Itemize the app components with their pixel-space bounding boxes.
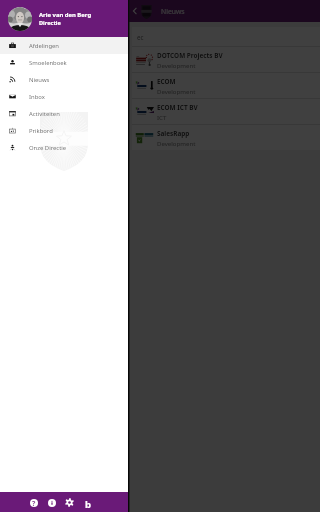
button[interactable]: ECOM [132, 73, 320, 98]
staticText: Development [157, 61, 196, 69]
staticText: Afdelingen [29, 42, 60, 50]
button[interactable]: Help [28, 497, 39, 508]
button[interactable]: Smoelenboek [0, 54, 128, 71]
staticText: Nieuws [161, 7, 185, 16]
staticText: Development [157, 87, 196, 95]
staticText: Nieuws [29, 76, 50, 84]
button[interactable]: SalesRapp [132, 125, 320, 150]
staticText: ECOM ICT BV [157, 103, 198, 112]
button[interactable]: Back [129, 5, 141, 17]
staticText: ECOM [157, 77, 176, 86]
button[interactable]: Settings [64, 497, 75, 508]
button[interactable]: Inbox [0, 88, 128, 105]
button[interactable]: DOTCOM Projects BV [132, 47, 320, 72]
staticText: ? [32, 499, 36, 507]
staticText: Onze Directie [29, 144, 67, 152]
staticText: Prikbord [29, 127, 53, 135]
button[interactable]: Prikbord [0, 122, 128, 139]
staticText: Directie [39, 19, 61, 27]
button[interactable]: Info [46, 497, 57, 508]
button[interactable]: ECOM ICT BV [132, 99, 320, 124]
staticText: Arie van den Berg [39, 11, 92, 19]
staticText: b [85, 498, 92, 508]
button[interactable]: Afdelingen [0, 37, 128, 54]
button[interactable]: Nieuws [0, 71, 128, 88]
staticText: Activiteiten [29, 110, 60, 118]
staticText: SalesRapp [157, 129, 190, 138]
button[interactable]: Onze Directie [0, 139, 128, 156]
staticText: ICT [157, 113, 167, 121]
staticText: ec [137, 33, 144, 41]
staticText: Inbox [29, 93, 45, 101]
staticText: Development [157, 139, 196, 147]
staticText: Smoelenboek [29, 59, 67, 67]
button[interactable]: Activiteiten [0, 105, 128, 122]
staticText: DOTCOM Projects BV [157, 51, 223, 60]
button[interactable]: About [82, 497, 93, 508]
